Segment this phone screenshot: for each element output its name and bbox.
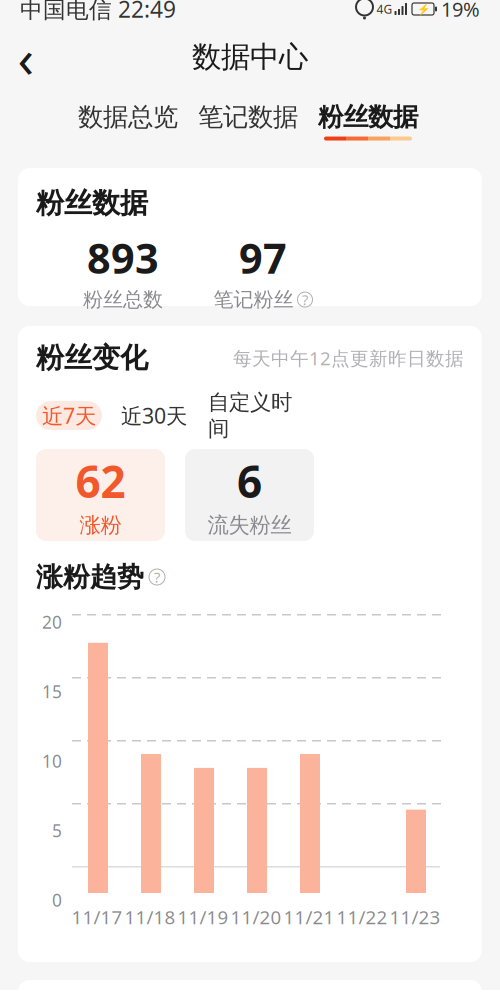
button[interactable]: 粉丝数据 [308,98,428,144]
staticText: 11/22 [336,905,387,929]
button[interactable]: 自定义时间 [202,401,298,430]
staticText: 11/17 [71,905,122,929]
staticText: 中国电信 22:49 [20,0,176,24]
staticText: 5 [52,819,62,842]
staticText: ⚡ [416,3,429,15]
staticText: 4G [376,1,392,17]
staticText: 涨粉 [79,512,121,538]
button[interactable]: 数据总览 [68,98,188,144]
staticText: 11/20 [230,905,281,929]
staticText: 笔记数据 [198,101,298,132]
staticText: 数据中心 [192,39,308,75]
staticText: 数据总览 [78,101,178,132]
staticText: 20 [42,610,62,633]
staticText: 19% [441,0,480,22]
staticText: 893 [87,230,159,285]
staticText: 近7天 [42,401,96,430]
staticText: 11/23 [389,905,440,929]
staticText: 每天中午12点更新昨日数据 [233,346,464,370]
staticText: 近30天 [121,401,187,430]
staticText: 97 [239,230,287,285]
button[interactable]: 近7天 [36,401,102,430]
staticText: 62 [75,452,125,510]
staticText: 粉丝数据 [318,101,418,132]
staticText: 11/19 [177,905,228,929]
button[interactable]: 笔记数据 [188,98,308,144]
staticText: 涨粉趋势 [36,561,144,593]
staticText: 流失粉丝 [207,512,291,538]
staticText: 自定义时间 [208,389,292,442]
button[interactable]: Back [0,32,52,82]
button[interactable]: Note fans info [297,292,312,307]
staticText: 10 [42,749,62,772]
staticText: 0 [52,888,62,911]
staticText: 15 [42,680,62,703]
button[interactable]: Fan growth trend info [149,569,165,585]
staticText: 笔记粉丝 [213,287,293,312]
staticText: ‹ [17,22,34,92]
staticText: ? [154,567,160,587]
staticText: 粉丝总数 [83,287,163,312]
staticText: 11/21 [283,905,334,929]
staticText: ? [302,290,308,309]
staticText: 粉丝数据 [36,186,148,220]
button[interactable]: 近30天 [116,401,192,430]
staticText: 11/18 [124,905,175,929]
staticText: 6 [237,452,262,510]
staticText: 粉丝变化 [36,341,148,375]
